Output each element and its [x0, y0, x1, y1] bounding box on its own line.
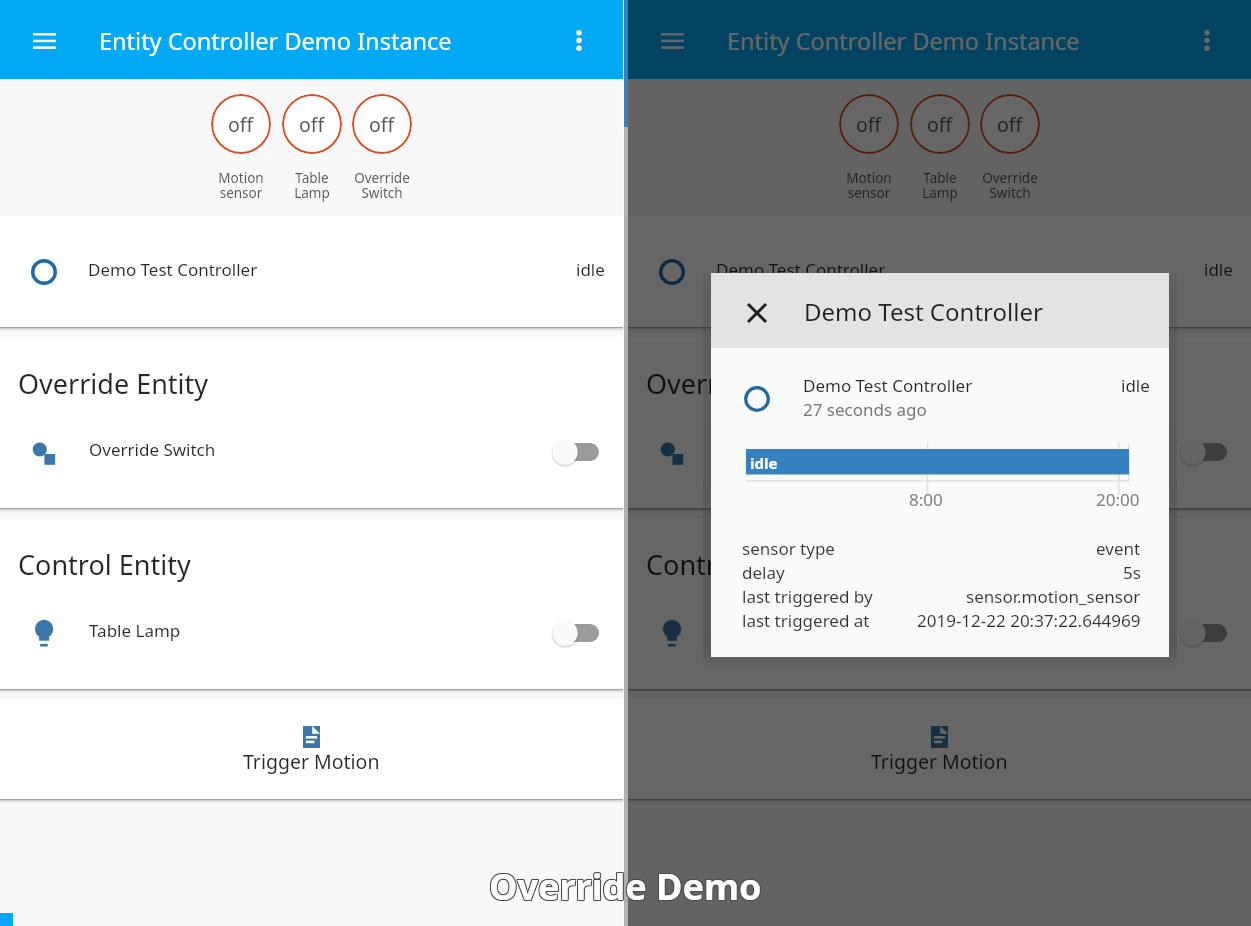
button[interactable]: off: [282, 94, 342, 202]
staticText: Trigger Motion: [871, 748, 1008, 775]
button[interactable]: Toggle Override Switch: [552, 438, 600, 466]
staticText: off: [856, 111, 882, 138]
staticText: Override Demo: [488, 862, 761, 911]
button[interactable]: Trigger Motion: [628, 699, 1251, 799]
staticText: off: [228, 111, 254, 138]
staticText: delay: [742, 561, 785, 584]
staticText: Table Lamp: [717, 619, 809, 642]
button[interactable]: Open navigation menu: [22, 19, 66, 63]
button[interactable]: off: [980, 94, 1040, 202]
staticText: Override Switch: [354, 169, 410, 202]
button[interactable]: Toggle Table Lamp: [1180, 619, 1228, 647]
staticText: Override Demo: [488, 861, 761, 910]
button[interactable]: Toggle Override Switch: [1180, 438, 1228, 466]
staticText: Override Demo: [489, 862, 762, 911]
staticText: Table Lamp: [89, 619, 181, 642]
button[interactable]: Override Switch: [628, 413, 1251, 483]
staticText: Demo Test Controller: [88, 258, 258, 281]
staticText: Override Switch: [89, 438, 216, 461]
staticText: 20:00: [1096, 488, 1140, 511]
staticText: 5s: [1123, 561, 1141, 584]
button[interactable]: Close: [738, 294, 776, 332]
staticText: Entity Controller Demo Instance: [727, 25, 1080, 57]
staticText: last triggered at: [742, 609, 870, 632]
staticText: off: [299, 111, 325, 138]
staticText: sensor.motion_sensor: [966, 585, 1141, 608]
staticText: event: [1096, 537, 1141, 560]
button[interactable]: Demo Test Controller: [0, 216, 623, 327]
staticText: Control Entity: [18, 546, 191, 583]
staticText: Demo Test Controller: [804, 295, 1043, 328]
staticText: Override Demo: [490, 861, 763, 910]
staticText: 8:00: [909, 488, 943, 511]
staticText: 27 seconds ago: [803, 398, 927, 421]
staticText: Override Switch: [982, 169, 1038, 202]
staticText: Table Lamp: [922, 169, 958, 202]
staticText: Motion sensor: [218, 169, 264, 202]
button[interactable]: Trigger Motion: [0, 699, 623, 799]
button[interactable]: Toggle Table Lamp: [552, 619, 600, 647]
staticText: off: [997, 111, 1023, 138]
button[interactable]: off: [839, 94, 899, 202]
button[interactable]: Table Lamp: [628, 594, 1251, 664]
staticText: 2019-12-22 20:37:22.644969: [917, 609, 1141, 632]
staticText: off: [927, 111, 953, 138]
staticText: Override Demo: [489, 863, 762, 912]
staticText: idle: [1204, 258, 1233, 281]
button[interactable]: off: [352, 94, 412, 202]
staticText: Trigger Motion: [243, 748, 380, 775]
button[interactable]: Table Lamp: [0, 594, 623, 664]
staticText: idle: [1121, 374, 1150, 397]
button[interactable]: More options: [1185, 18, 1229, 62]
staticText: idle: [576, 258, 605, 281]
staticText: Override Entity: [646, 365, 837, 402]
staticText: Control Entity: [646, 546, 819, 583]
staticText: last triggered by: [742, 585, 873, 608]
staticText: sensor type: [742, 537, 835, 560]
button[interactable]: More options: [557, 18, 601, 62]
staticText: Entity Controller Demo Instance: [99, 25, 452, 57]
button[interactable]: Override Switch: [0, 413, 623, 483]
button[interactable]: Open navigation menu: [650, 19, 694, 63]
staticText: off: [369, 111, 395, 138]
button[interactable]: off: [211, 94, 271, 202]
staticText: Override Entity: [18, 365, 209, 402]
staticText: Table Lamp: [294, 169, 330, 202]
staticText: Demo Test Controller: [803, 374, 973, 397]
staticText: Demo Test Controller: [716, 258, 886, 281]
staticText: Override Switch: [717, 438, 844, 461]
staticText: Motion sensor: [846, 169, 892, 202]
staticText: Override Demo: [490, 862, 763, 911]
staticText: Override Demo: [489, 861, 762, 910]
staticText: Override Demo: [490, 863, 763, 912]
staticText: idle: [750, 453, 778, 473]
staticText: Override Demo: [488, 863, 761, 912]
button[interactable]: off: [910, 94, 970, 202]
button[interactable]: Demo Test Controller: [628, 216, 1251, 327]
